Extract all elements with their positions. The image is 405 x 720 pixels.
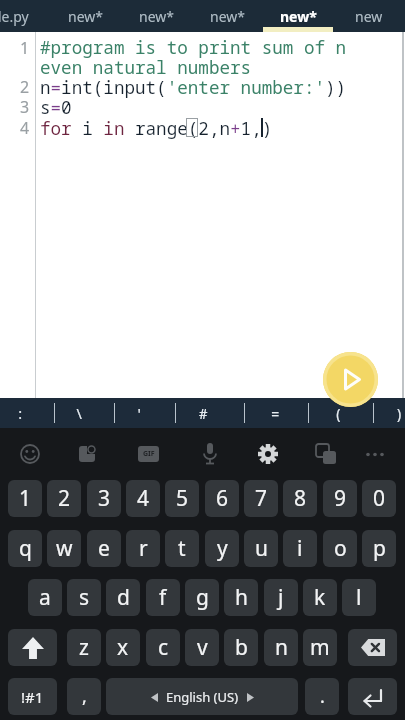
staticText: t [178,534,186,563]
staticText: 5 [176,484,189,513]
button[interactable]: new [355,0,383,32]
staticText: English (US) [166,688,239,706]
staticText: k [314,583,326,612]
staticText: 3 [98,484,111,513]
button[interactable]: i [283,530,317,567]
staticText: l [356,583,362,612]
staticText: f [159,583,167,612]
button[interactable]: English (US) [106,678,298,715]
staticText: 4 [137,484,150,513]
button[interactable] [8,629,57,666]
staticText: new* [139,7,174,26]
button[interactable]: r [126,530,160,567]
staticText: 7 [255,484,268,513]
staticText: even natural numbers [40,55,252,79]
button[interactable]: 2 [47,480,81,517]
staticText: . [320,684,325,709]
staticText: le.py [0,7,29,26]
staticText: 8 [294,484,307,513]
staticText: GIF [143,449,155,459]
staticText: g [196,583,209,612]
staticText: s [79,583,90,612]
staticText: b [235,633,248,662]
button[interactable]: u [244,530,278,567]
button[interactable]: # [183,398,223,428]
button[interactable]: 9 [323,480,357,517]
button[interactable]: z [67,629,101,666]
button[interactable]: 1 [8,480,42,517]
staticText: c [158,633,169,662]
button[interactable]: q [8,530,42,567]
button[interactable]: . [305,678,339,715]
button[interactable]: n [264,629,298,666]
button[interactable]: 4 [126,480,160,517]
button[interactable]: le.py [0,0,29,32]
button[interactable]: b [224,629,258,666]
staticText: #program is to print sum of n [40,35,347,59]
button[interactable]: ' [119,398,159,428]
button[interactable]: e [87,530,121,567]
button[interactable] [323,352,378,407]
button[interactable]: new* [210,0,245,32]
button[interactable]: k [303,579,337,616]
staticText: n [275,633,288,662]
button[interactable]: j [264,579,298,616]
staticText: u [255,534,268,563]
button[interactable]: y [205,530,239,567]
button[interactable] [348,678,397,715]
button[interactable]: 6 [205,480,239,517]
button[interactable]: ( [318,398,358,428]
button[interactable]: p [362,530,396,567]
button[interactable]: 3 [87,480,121,517]
button[interactable]: h [224,579,258,616]
staticText: i [297,534,303,563]
staticText: z [79,633,89,662]
staticText: ) [395,404,404,423]
staticText: !#1 [21,687,44,707]
button[interactable]: v [185,629,219,666]
staticText: 2 [20,76,30,98]
button[interactable]: \ [59,398,99,428]
button[interactable]: , [67,678,101,715]
button[interactable]: new* [139,0,174,32]
staticText: h [235,583,248,612]
button[interactable]: f [146,579,180,616]
button[interactable]: l [342,579,376,616]
staticText: ' [135,404,144,423]
button[interactable]: o [323,530,357,567]
button[interactable] [348,629,397,666]
staticText: e [98,534,110,563]
button[interactable]: ) [379,398,405,428]
button[interactable]: = [255,398,295,428]
staticText: , [82,684,87,709]
staticText: a [39,583,51,612]
button[interactable]: 5 [165,480,199,517]
staticText: 0 [373,484,386,513]
staticText: w [56,534,73,563]
staticText: # [199,404,208,423]
button[interactable]: w [47,530,81,567]
button[interactable]: 7 [244,480,278,517]
button[interactable]: 0 [362,480,396,517]
button[interactable]: t [165,530,199,567]
staticText: : [16,404,25,423]
button[interactable]: x [106,629,140,666]
button[interactable]: new* [68,0,103,32]
staticText: ( [334,404,343,423]
button[interactable]: s [67,579,101,616]
button[interactable]: a [28,579,62,616]
staticText: 1 [20,37,30,59]
staticText: = [271,404,280,423]
staticText: new [355,7,383,26]
button[interactable]: m [303,629,337,666]
button[interactable]: : [0,398,40,428]
button[interactable]: d [106,579,140,616]
button[interactable]: 8 [283,480,317,517]
staticText: n=int(input('enter number:')) [40,75,347,99]
button[interactable]: c [146,629,180,666]
staticText: 3 [20,96,30,118]
staticText: 9 [334,484,347,513]
button[interactable]: new* [263,0,333,32]
button[interactable]: !#1 [8,678,57,715]
button[interactable]: g [185,579,219,616]
